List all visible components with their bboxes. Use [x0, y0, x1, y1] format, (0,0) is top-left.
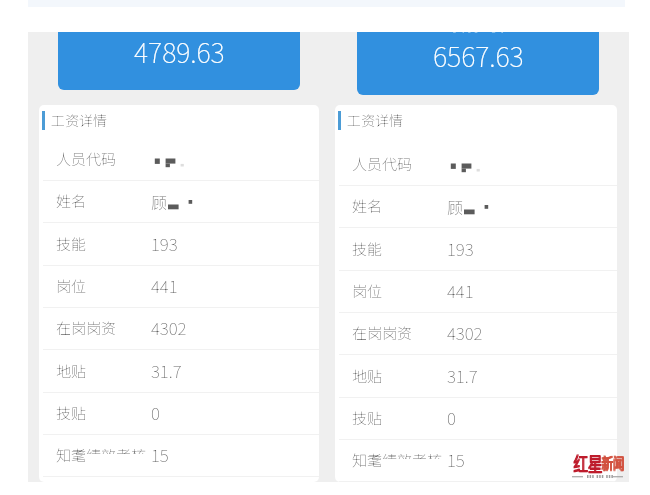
staticText: 顾 — [151, 190, 168, 213]
button[interactable]: 地贴 — [335, 356, 617, 398]
staticText: 技贴 — [352, 407, 383, 429]
button[interactable]: 技能 — [335, 229, 617, 271]
staticText: 15 — [447, 447, 465, 472]
staticText: 技能 — [56, 233, 87, 255]
staticText: 地贴 — [56, 360, 87, 382]
button[interactable]: 知耄 — [39, 435, 319, 477]
staticText: 人员代码 — [56, 148, 117, 170]
button[interactable]: 实发工资 — [357, 32, 599, 95]
staticText: 工资详情 — [51, 110, 107, 130]
button[interactable]: 姓名 — [335, 186, 617, 228]
staticText: 岗位 — [56, 275, 87, 297]
button[interactable]: 知耄 — [335, 440, 617, 482]
staticText: 新闻 — [602, 451, 626, 474]
staticText: 岗位 — [352, 280, 383, 302]
staticText: 姓名 — [56, 190, 87, 212]
button[interactable]: 在岗岗资 — [39, 308, 319, 350]
staticText: 193 — [447, 236, 474, 261]
staticText: 绩效考核 — [382, 454, 442, 459]
staticText: 红星 — [573, 448, 602, 474]
staticText: 31.7 — [151, 358, 182, 383]
button[interactable]: 姓名 — [39, 181, 319, 223]
staticText: 在岗岗资 — [352, 322, 413, 344]
staticText: 15 — [151, 442, 169, 467]
staticText: 在岗岗资 — [56, 317, 117, 339]
button[interactable]: 人员代码 — [335, 144, 617, 186]
staticText: 4302 — [447, 320, 483, 345]
staticText: 技能 — [352, 238, 383, 260]
staticText: 知耄 — [352, 449, 383, 471]
staticText: 地贴 — [352, 365, 383, 387]
staticText: 6567.63 — [433, 36, 524, 75]
button[interactable]: 人员代码 — [39, 139, 319, 181]
staticText: 实发工资 — [452, 32, 505, 36]
staticText: 4302 — [151, 315, 187, 340]
staticText: 顾 — [447, 195, 464, 218]
staticText: 绩效考核 — [86, 449, 146, 454]
button[interactable]: 技贴 — [39, 393, 319, 435]
staticText: 4789.63 — [134, 32, 225, 71]
staticText: 红星 — [574, 448, 603, 474]
staticText: 新闻 — [602, 450, 626, 473]
staticText: 人员代码 — [352, 153, 413, 175]
staticText: 姓名 — [352, 195, 383, 217]
staticText: 红星 — [573, 449, 602, 475]
button[interactable]: 技能 — [39, 224, 319, 266]
button[interactable]: 技贴 — [335, 398, 617, 440]
button[interactable]: 在岗岗资 — [335, 313, 617, 355]
button[interactable]: 地贴 — [39, 351, 319, 393]
button[interactable]: 岗位 — [39, 266, 319, 308]
button[interactable]: 4789.63 — [58, 32, 300, 90]
staticText: 441 — [151, 273, 178, 298]
staticText: 工资详情 — [347, 110, 403, 130]
button[interactable]: 岗位 — [335, 271, 617, 313]
staticText: 新闻 — [601, 450, 625, 473]
staticText: 0 — [447, 405, 456, 430]
staticText: 红星 — [574, 449, 603, 475]
staticText: 193 — [151, 231, 178, 256]
staticText: 441 — [447, 278, 474, 303]
staticText: 新闻 — [601, 451, 625, 474]
staticText: 技贴 — [56, 402, 87, 424]
staticText: 31.7 — [447, 363, 478, 388]
staticText: 0 — [151, 400, 160, 425]
staticText: 知耄 — [56, 444, 87, 466]
